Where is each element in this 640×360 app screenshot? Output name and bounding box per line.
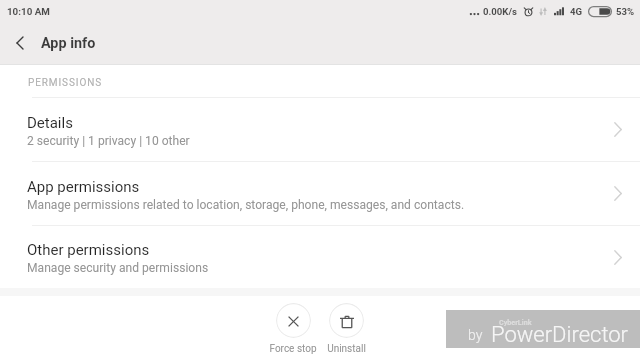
staticText: Other permissions xyxy=(27,241,150,259)
staticText: Uninstall xyxy=(327,343,366,355)
button[interactable]: Details xyxy=(0,98,640,161)
staticText: 10:10 AM xyxy=(7,6,50,17)
staticText: Details xyxy=(27,114,73,132)
button[interactable]: Back xyxy=(0,22,40,64)
staticText: 53% xyxy=(616,6,635,17)
staticText: PERMISSIONS xyxy=(28,77,103,89)
staticText: App permissions xyxy=(27,178,140,196)
staticText: PowerDirector xyxy=(491,322,629,348)
button[interactable]: App permissions xyxy=(0,162,640,225)
staticText: Manage security and permissions xyxy=(27,261,209,275)
staticText: 4G xyxy=(570,6,583,17)
staticText: 2 security | 1 privacy | 10 other xyxy=(27,134,190,148)
staticText: Force stop xyxy=(269,343,317,355)
staticText: CyberLink xyxy=(499,318,532,326)
staticText: Manage permissions related to location, … xyxy=(27,198,465,212)
button[interactable]: Uninstall xyxy=(327,303,366,355)
button[interactable]: Other permissions xyxy=(0,226,640,288)
staticText: by xyxy=(468,327,483,343)
button[interactable]: Force stop xyxy=(269,303,317,355)
staticText: App info xyxy=(41,35,96,52)
staticText: 0.00K/s xyxy=(483,6,517,17)
